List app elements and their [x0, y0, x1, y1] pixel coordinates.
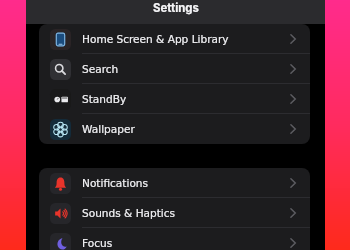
button[interactable]: Sounds & Haptics: [39, 198, 310, 228]
staticText: Focus: [82, 237, 113, 249]
button[interactable]: StandBy: [39, 84, 310, 114]
staticText: Home Screen & App Library: [82, 33, 229, 45]
staticText: Notifications: [82, 177, 149, 189]
staticText: Search: [82, 63, 119, 75]
button[interactable]: Home Screen & App Library: [39, 24, 310, 54]
button[interactable]: Notifications: [39, 168, 310, 198]
button[interactable]: Wallpaper: [39, 114, 310, 144]
staticText: Sounds & Haptics: [82, 207, 176, 219]
staticText: StandBy: [82, 93, 127, 105]
button[interactable]: Search: [39, 54, 310, 84]
button[interactable]: Focus: [39, 228, 310, 250]
staticText: Settings: [153, 1, 199, 15]
staticText: Wallpaper: [82, 123, 135, 135]
